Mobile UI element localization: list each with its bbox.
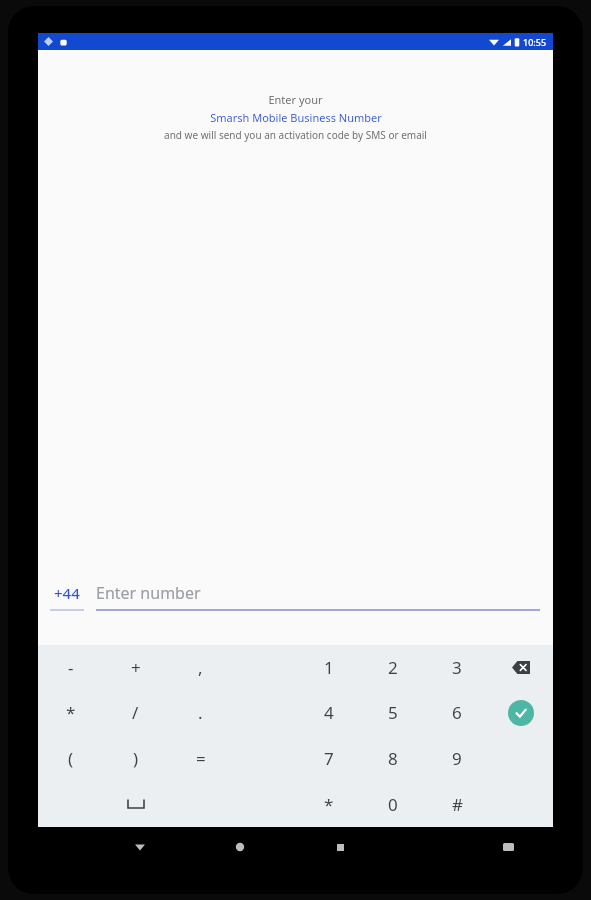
button[interactable]: 7: [297, 735, 361, 781]
button[interactable]: Enter number: [96, 582, 540, 611]
staticText: 2: [388, 656, 398, 679]
button[interactable]: Confirm: [489, 690, 553, 735]
staticText: 3: [452, 656, 462, 679]
button[interactable]: =: [168, 735, 233, 781]
staticText: #: [452, 793, 463, 816]
staticText: Smarsh Mobile Business Number: [210, 110, 382, 125]
button[interactable]: Space: [103, 781, 168, 827]
staticText: (: [68, 747, 74, 770]
staticText: 7: [324, 747, 334, 770]
button[interactable]: #: [425, 781, 489, 827]
staticText: 6: [452, 701, 462, 724]
staticText: 4: [324, 701, 334, 724]
staticText: 0: [388, 793, 398, 816]
staticText: =: [196, 747, 206, 770]
button[interactable]: Switch keyboard: [496, 835, 520, 859]
button[interactable]: *: [38, 690, 103, 735]
button[interactable]: 3: [425, 645, 489, 690]
staticText: 8: [388, 747, 398, 770]
staticText: 5: [388, 701, 398, 724]
staticText: +: [131, 656, 141, 679]
staticText: /: [132, 701, 139, 724]
button[interactable]: (: [38, 735, 103, 781]
staticText: +44: [54, 583, 80, 603]
staticText: .: [198, 701, 203, 724]
button[interactable]: 6: [425, 690, 489, 735]
staticText: *: [324, 793, 334, 816]
staticText: *: [66, 701, 76, 724]
button[interactable]: 5: [361, 690, 425, 735]
button[interactable]: 9: [425, 735, 489, 781]
button[interactable]: Back: [128, 835, 152, 859]
staticText: and we will send you an activation code …: [164, 128, 427, 142]
staticText: 9: [452, 747, 462, 770]
staticText: ,: [198, 656, 203, 679]
button[interactable]: 4: [297, 690, 361, 735]
staticText: Enter number: [96, 582, 201, 604]
staticText: -: [68, 656, 74, 679]
staticText: 10:55: [523, 36, 547, 48]
staticText: ): [133, 747, 139, 770]
button[interactable]: -: [38, 645, 103, 690]
button[interactable]: Delete: [489, 645, 553, 690]
button[interactable]: *: [297, 781, 361, 827]
button[interactable]: .: [168, 690, 233, 735]
button[interactable]: +: [103, 645, 168, 690]
button[interactable]: 0: [361, 781, 425, 827]
button[interactable]: 8: [361, 735, 425, 781]
staticText: 1: [324, 656, 334, 679]
button[interactable]: ,: [168, 645, 233, 690]
button[interactable]: Recents: [328, 835, 352, 859]
button[interactable]: ): [103, 735, 168, 781]
button[interactable]: 1: [297, 645, 361, 690]
staticText: Enter your: [268, 92, 323, 107]
button[interactable]: +44: [50, 583, 84, 611]
button[interactable]: /: [103, 690, 168, 735]
button[interactable]: Home: [228, 835, 252, 859]
button[interactable]: 2: [361, 645, 425, 690]
